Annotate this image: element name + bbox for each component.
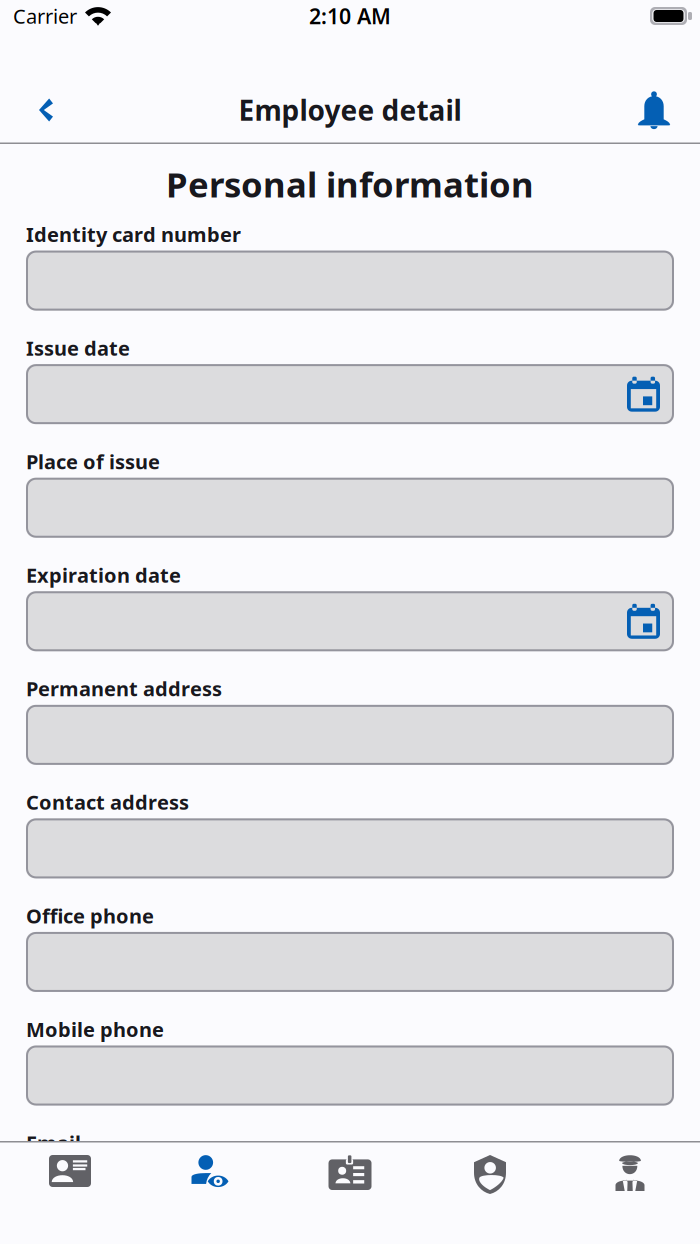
button[interactable]: Contacts bbox=[0, 1141, 140, 1244]
staticText: Expiration date bbox=[26, 562, 181, 588]
button[interactable]: Identity card bbox=[280, 1141, 420, 1244]
staticText: Personal information bbox=[166, 161, 534, 207]
staticText: Employee detail bbox=[238, 91, 461, 129]
staticText: Office phone bbox=[26, 902, 154, 929]
staticText: Contact address bbox=[26, 789, 189, 815]
button[interactable]: Staff bbox=[560, 1141, 700, 1244]
staticText: Email bbox=[26, 1129, 81, 1156]
staticText: Mobile phone bbox=[26, 1016, 164, 1043]
staticText: 2:10 AM bbox=[309, 2, 391, 30]
button[interactable] bbox=[26, 591, 674, 651]
button[interactable]: Back bbox=[0, 76, 79, 144]
button[interactable] bbox=[26, 1045, 674, 1105]
button[interactable] bbox=[26, 478, 674, 538]
button[interactable]: Employee detail bbox=[140, 1141, 280, 1244]
staticText: Issue date bbox=[26, 335, 130, 361]
button[interactable] bbox=[26, 251, 674, 311]
staticText: Identity card number bbox=[26, 221, 241, 248]
button[interactable] bbox=[26, 705, 674, 765]
button[interactable] bbox=[26, 818, 674, 878]
staticText: Permanent address bbox=[26, 675, 222, 702]
staticText: Carrier bbox=[13, 3, 77, 29]
button[interactable]: Security bbox=[420, 1141, 560, 1244]
button[interactable] bbox=[26, 932, 674, 992]
button[interactable] bbox=[26, 1159, 674, 1219]
staticText: Place of issue bbox=[26, 448, 160, 475]
button[interactable]: Notifications bbox=[611, 76, 700, 144]
button[interactable] bbox=[26, 364, 674, 424]
